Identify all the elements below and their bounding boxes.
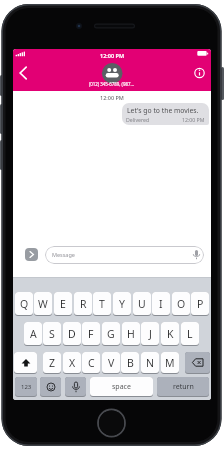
button[interactable]: F (82, 322, 100, 345)
button[interactable]: space (90, 377, 153, 396)
staticText: Q (20, 297, 29, 311)
button[interactable]: Q (15, 292, 33, 315)
staticText: space (112, 382, 131, 392)
staticText: 12:00 PM (100, 52, 125, 59)
button[interactable]: P (191, 292, 209, 315)
button[interactable] (191, 64, 209, 82)
button[interactable]: Y (113, 292, 131, 315)
button[interactable]: T (93, 292, 111, 315)
staticText: 123 (21, 383, 32, 391)
staticText: 12:00 PM (182, 116, 205, 123)
staticText: D (68, 327, 76, 341)
button[interactable] (99, 61, 127, 89)
button[interactable]: E (54, 292, 72, 315)
button[interactable]: W (34, 292, 52, 315)
button[interactable] (65, 377, 86, 396)
staticText: Message (52, 251, 75, 258)
staticText: E (60, 297, 66, 311)
button[interactable] (185, 352, 210, 373)
button[interactable]: B (121, 352, 139, 373)
button[interactable] (40, 377, 61, 396)
staticText: R (80, 297, 87, 311)
button[interactable]: A (24, 322, 42, 345)
button[interactable]: X (63, 352, 81, 373)
staticText: L (187, 327, 193, 341)
staticText: Let's go to the movies. (127, 106, 199, 115)
staticText: X (69, 356, 76, 370)
button[interactable]: 123 (15, 377, 37, 396)
button[interactable]: N (141, 352, 159, 373)
button[interactable]: return (157, 377, 209, 396)
staticText: V (108, 356, 115, 370)
staticText: C (88, 356, 95, 370)
staticText: M (165, 356, 175, 370)
button[interactable]: U (133, 292, 151, 315)
button[interactable]: G (102, 322, 120, 345)
staticText: Z (49, 356, 56, 370)
staticText: P (197, 297, 204, 311)
button[interactable] (14, 352, 37, 373)
staticText: G (107, 327, 115, 341)
staticText: Y (119, 297, 125, 311)
button[interactable]: J (141, 322, 159, 345)
button[interactable] (25, 248, 38, 261)
staticText: J (149, 327, 152, 341)
staticText: (012) 345-6789, (987... (89, 81, 135, 87)
button[interactable]: Z (43, 352, 61, 373)
staticText: F (88, 327, 94, 341)
button[interactable]: I (152, 292, 170, 315)
staticText: W (38, 297, 48, 311)
button[interactable]: V (102, 352, 120, 373)
staticText: return (173, 382, 194, 392)
button[interactable]: H (122, 322, 140, 345)
staticText: U (138, 297, 146, 311)
button[interactable]: D (63, 322, 81, 345)
staticText: 12:00 PM (100, 94, 124, 101)
button[interactable]: M (161, 352, 179, 373)
staticText: K (167, 327, 174, 341)
button[interactable] (15, 63, 33, 83)
button[interactable]: Message (45, 246, 204, 264)
staticText: T (99, 297, 105, 311)
staticText: N (146, 356, 154, 370)
button[interactable]: R (74, 292, 92, 315)
staticText: Delivered (126, 116, 150, 123)
button[interactable]: S (43, 322, 61, 345)
staticText: B (127, 356, 134, 370)
button[interactable]: O (172, 292, 190, 315)
staticText: A (30, 327, 37, 341)
staticText: I (159, 297, 163, 311)
button[interactable]: C (82, 352, 100, 373)
button[interactable]: L (181, 322, 199, 345)
staticText: H (127, 327, 135, 341)
staticText: O (177, 297, 186, 311)
button[interactable]: Let's go to the movies. (122, 103, 209, 125)
staticText: S (49, 327, 55, 341)
button[interactable]: K (161, 322, 179, 345)
